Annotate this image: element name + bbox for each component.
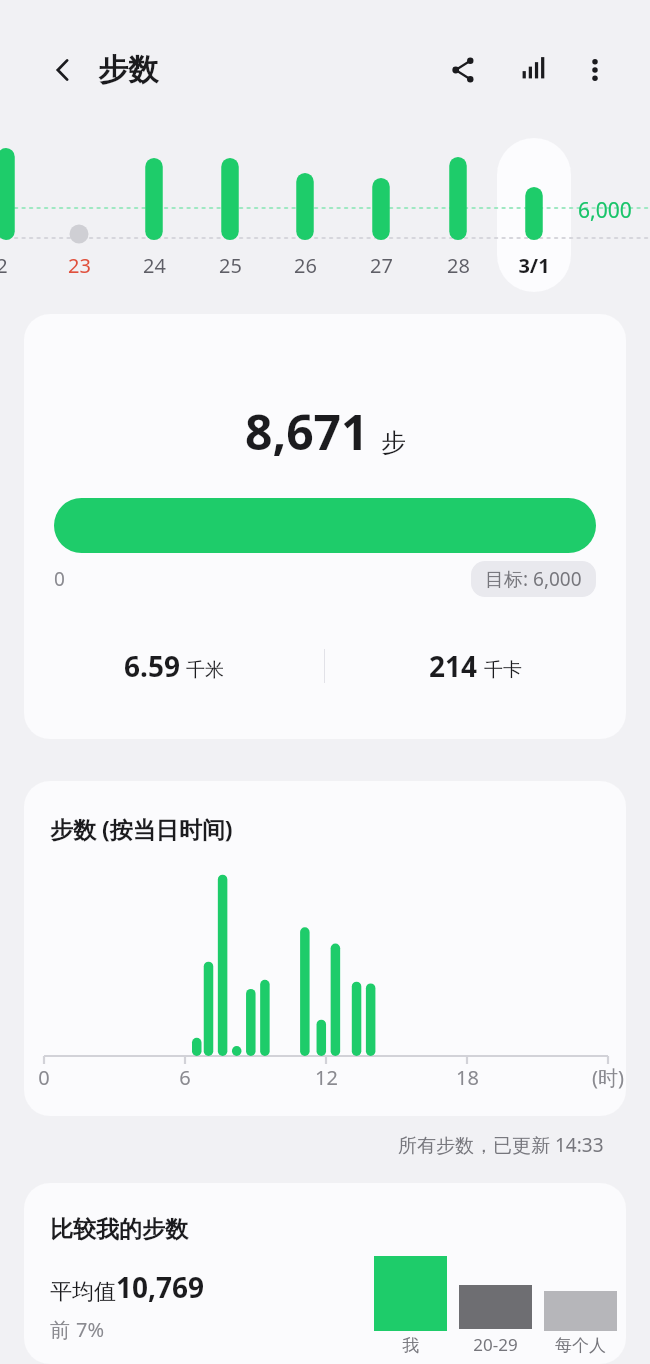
button[interactable]: 23: [51, 252, 107, 279]
button[interactable]: Chart: [506, 45, 556, 95]
staticText: 25: [219, 252, 242, 279]
button[interactable]: 24: [126, 252, 182, 279]
staticText: 千米: [186, 658, 224, 682]
button[interactable]: 27: [353, 252, 409, 279]
staticText: 前: [50, 1316, 76, 1343]
staticText: 7%: [76, 1316, 105, 1343]
staticText: 10,769: [116, 1268, 205, 1306]
staticText: 步数: [98, 51, 158, 89]
staticText: 28: [447, 252, 470, 279]
staticText: 26: [294, 252, 317, 279]
button[interactable]: 比较我的步数: [24, 1183, 626, 1364]
staticText: 214: [429, 647, 478, 685]
button[interactable]: More options: [570, 45, 620, 95]
staticText: 每个人: [555, 1335, 606, 1356]
staticText: 所有步数，已更新 14:33: [398, 1132, 604, 1158]
staticText: 我: [402, 1335, 419, 1356]
staticText: 2: [0, 252, 8, 279]
button[interactable]: 8,671: [24, 314, 626, 739]
staticText: 比较我的步数: [50, 1215, 188, 1244]
staticText: 12: [315, 1064, 338, 1091]
button[interactable]: 步数 (按当日时间): [24, 781, 626, 1116]
staticText: 目标: 6,000: [485, 566, 582, 592]
button[interactable]: 28: [430, 252, 486, 279]
staticText: 0: [54, 566, 65, 592]
staticText: 6,000: [578, 196, 632, 225]
button[interactable]: 25: [202, 252, 258, 279]
staticText: 6.59: [124, 647, 180, 685]
staticText: 步: [381, 427, 406, 458]
staticText: 0: [38, 1064, 50, 1091]
staticText: 8,671: [245, 399, 369, 464]
staticText: 20-29: [473, 1333, 518, 1356]
button[interactable]: [497, 138, 571, 292]
button[interactable]: Share: [438, 45, 488, 95]
staticText: 6: [179, 1064, 191, 1091]
button[interactable]: Back: [40, 47, 86, 93]
staticText: 24: [143, 252, 166, 279]
staticText: (时): [592, 1064, 624, 1091]
staticText: 平均值: [50, 1278, 116, 1306]
button[interactable]: 2: [0, 252, 30, 279]
button[interactable]: 3/1: [506, 252, 562, 279]
staticText: 步数 (按当日时间): [50, 813, 233, 844]
staticText: 27: [370, 252, 393, 279]
button[interactable]: 26: [277, 252, 333, 279]
staticText: 千卡: [484, 658, 522, 682]
staticText: 18: [456, 1064, 479, 1091]
staticText: 3/1: [518, 252, 550, 279]
staticText: 23: [68, 252, 91, 279]
